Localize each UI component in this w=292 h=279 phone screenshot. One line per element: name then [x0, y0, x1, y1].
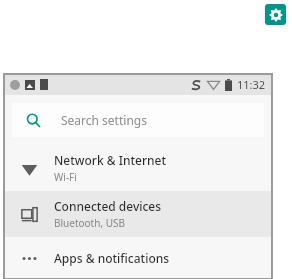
staticText: Bluetooth, USB [54, 216, 125, 230]
button[interactable]: Settings [265, 4, 286, 25]
button[interactable]: Apps & notifications [4, 237, 272, 279]
staticText: Connected devices [54, 198, 162, 214]
staticText: Search settings [61, 112, 147, 128]
button[interactable]: Network & Internet [4, 145, 272, 191]
staticText: Network & Internet [54, 152, 167, 168]
staticText: 11:32 [237, 77, 266, 92]
staticText: Wi-Fi [54, 170, 77, 184]
button[interactable]: Connected devices [4, 191, 272, 237]
staticText: Apps & notifications [54, 250, 170, 266]
button[interactable]: Search settings [12, 103, 264, 137]
